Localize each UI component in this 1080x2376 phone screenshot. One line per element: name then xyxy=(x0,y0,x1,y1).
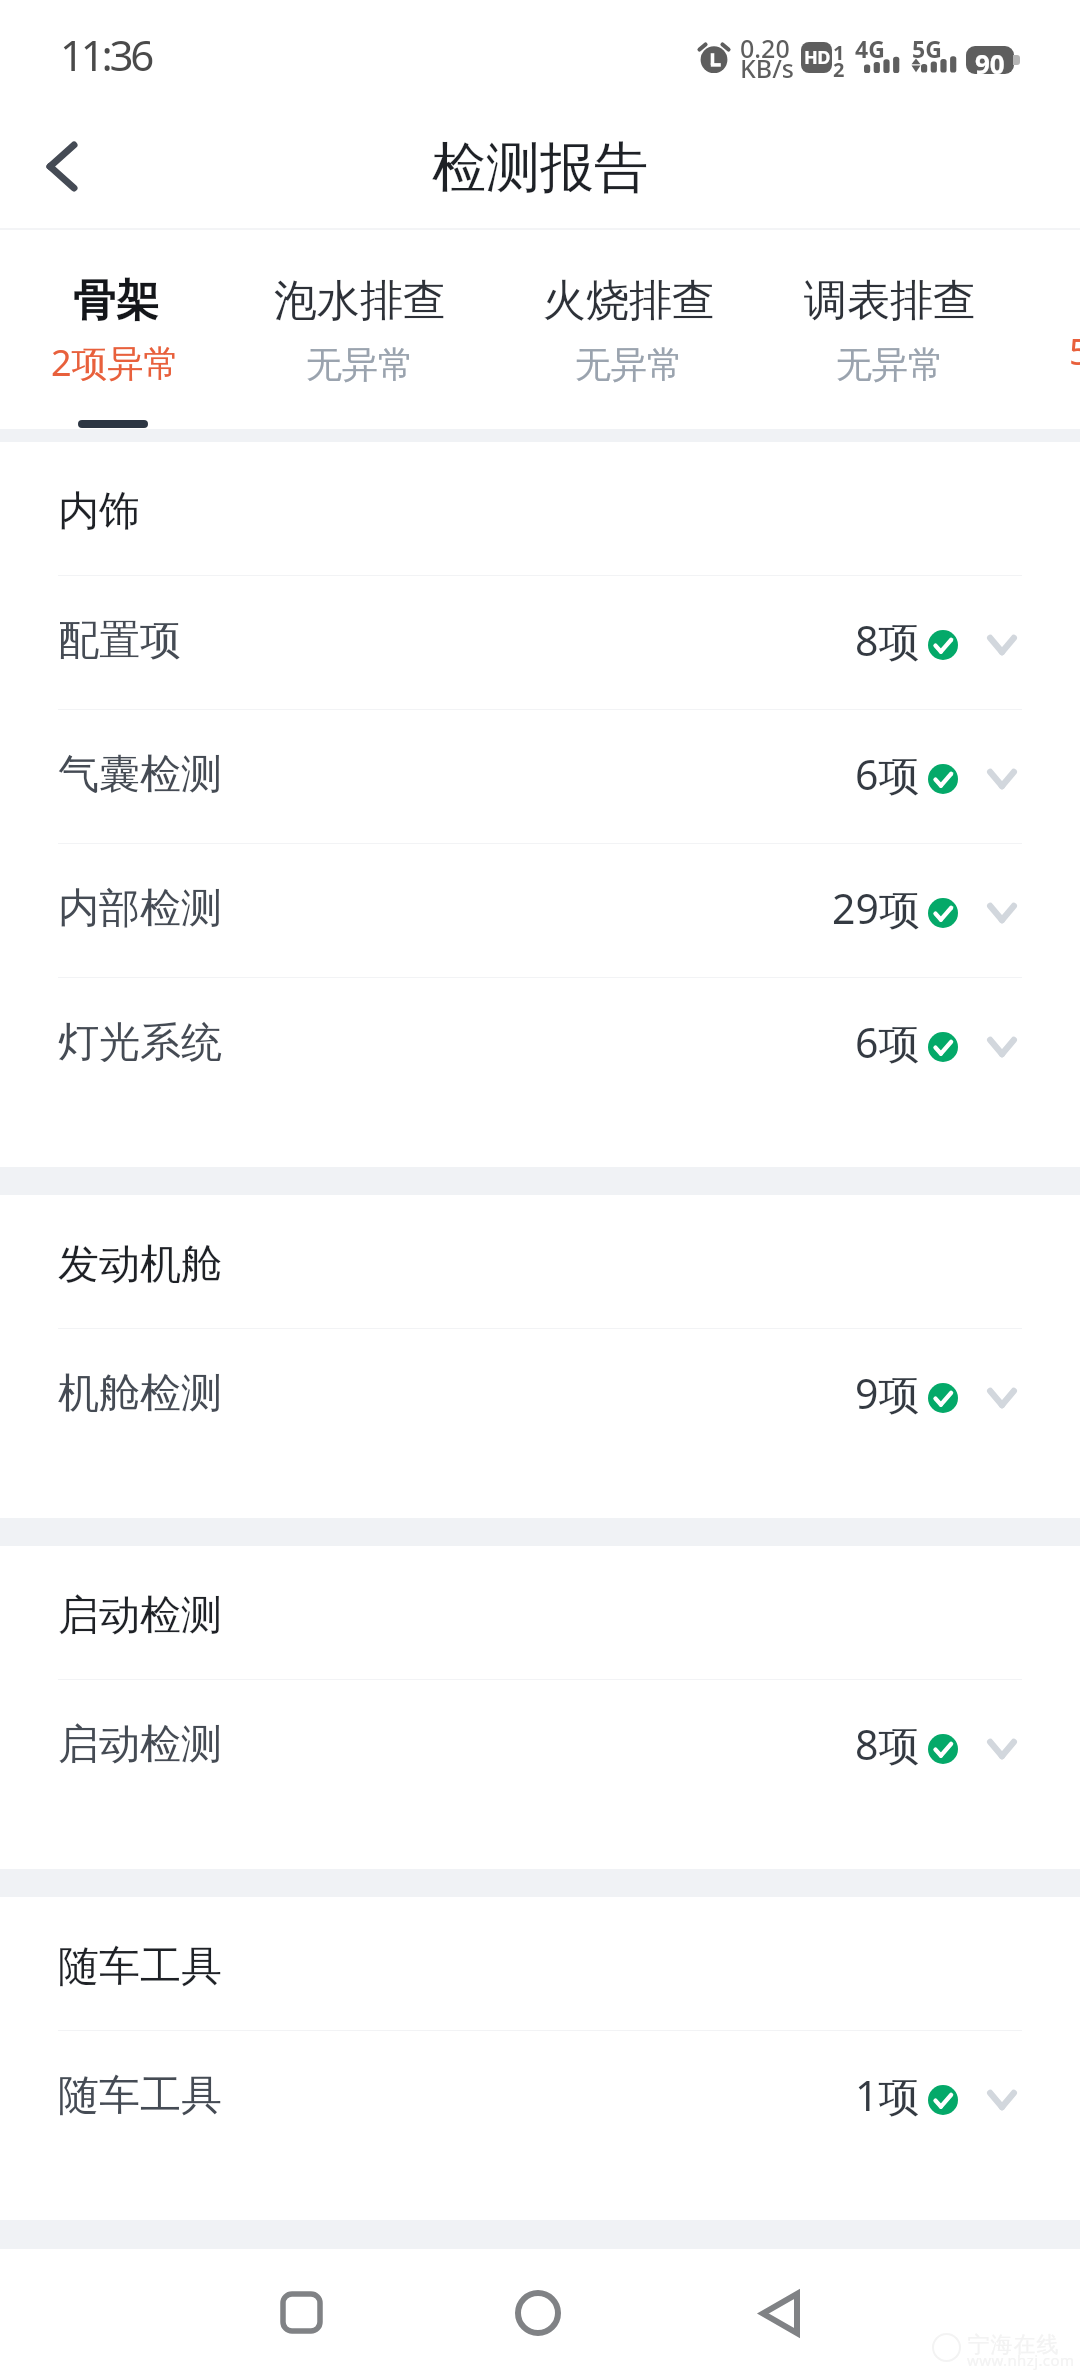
staticText: 0.20 xyxy=(740,31,790,65)
staticText: 灯光系统 xyxy=(58,1017,222,1069)
staticText: 调表排查 xyxy=(804,274,976,328)
staticText: 29项 xyxy=(832,880,920,936)
button[interactable]: 5项异常 xyxy=(1009,230,1080,429)
button[interactable]: 配置项 xyxy=(0,576,1080,709)
staticText: 5G xyxy=(912,33,942,64)
staticText: 无异常 xyxy=(306,342,414,387)
staticText: www.nhzj.com xyxy=(967,2350,1075,2370)
button[interactable]: 灯光系统 xyxy=(0,978,1080,1111)
staticText: 无异常 xyxy=(575,342,683,387)
button[interactable]: 内部检测 xyxy=(0,844,1080,977)
button[interactable]: Recents xyxy=(253,2249,349,2376)
staticText: HD xyxy=(804,45,830,70)
staticText: 4G xyxy=(855,33,885,64)
staticText: 6项 xyxy=(855,746,920,802)
staticText: 发动机舱 xyxy=(58,1239,222,1291)
staticText: 1项 xyxy=(855,2067,920,2123)
staticText: 90 xyxy=(975,46,1005,74)
staticText: 8项 xyxy=(855,1716,920,1772)
button[interactable]: Back xyxy=(729,2249,825,2376)
staticText: 6项 xyxy=(855,1014,920,1070)
button[interactable]: 随车工具 xyxy=(0,2031,1080,2164)
staticText: 机舱检测 xyxy=(58,1368,222,1420)
staticText: 2项异常 xyxy=(51,338,180,387)
button[interactable]: 启动检测 xyxy=(0,1680,1080,1813)
staticText: 气囊检测 xyxy=(58,749,222,801)
staticText: 无异常 xyxy=(836,342,944,387)
staticText: 随车工具 xyxy=(58,2070,222,2122)
button[interactable]: Back xyxy=(0,110,120,228)
staticText: 内部检测 xyxy=(58,883,222,935)
staticText: 11:36 xyxy=(60,26,151,83)
staticText: 随车工具 xyxy=(58,1941,222,1993)
button[interactable]: 骨架 xyxy=(0,230,231,429)
button[interactable]: 火烧排查 xyxy=(488,230,770,429)
staticText: KB/s xyxy=(740,51,794,85)
staticText: 内饰 xyxy=(58,486,140,538)
staticText: 骨架 xyxy=(73,274,159,328)
staticText: 8项 xyxy=(855,612,920,668)
staticText: 5项异常 xyxy=(1069,327,1080,376)
staticText: 启动检测 xyxy=(58,1719,222,1771)
staticText: 宁海在线 xyxy=(967,2331,1059,2359)
button[interactable]: Home xyxy=(490,2249,586,2376)
button[interactable]: 气囊检测 xyxy=(0,710,1080,843)
button[interactable]: 机舱检测 xyxy=(0,1329,1080,1462)
staticText: 2 xyxy=(833,56,845,83)
button[interactable]: 泡水排查 xyxy=(231,230,488,429)
staticText: 配置项 xyxy=(58,615,181,667)
staticText: 1 xyxy=(833,39,845,66)
staticText: 启动检测 xyxy=(58,1590,222,1642)
staticText: 泡水排查 xyxy=(274,274,446,328)
staticText: 9项 xyxy=(855,1365,920,1421)
staticText: 检测报告 xyxy=(432,134,648,202)
staticText: 火烧排查 xyxy=(543,274,715,328)
button[interactable]: 调表排查 xyxy=(770,230,1009,429)
